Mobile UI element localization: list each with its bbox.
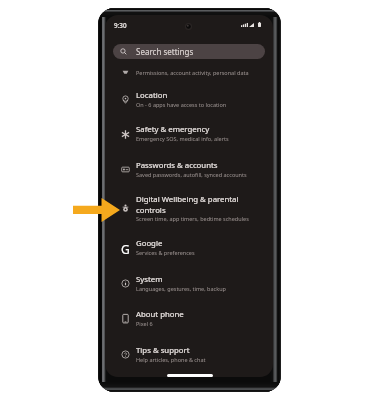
button[interactable] [105,233,273,267]
staticText: On - 6 apps have access to location [136,101,227,108]
staticText: System [136,274,163,285]
button[interactable] [105,154,273,188]
staticText: 9:30 [114,21,127,30]
staticText: Pixel 6 [136,320,153,327]
staticText: About phone [136,309,184,320]
button[interactable] [105,63,273,77]
staticText: Languages, gestures, time, backup [136,285,226,292]
staticText: Emergency SOS, medical info, alerts [136,135,229,142]
staticText: Location [136,90,168,101]
staticText: Search settings [136,46,194,57]
staticText: Help articles, phone & chat [136,356,206,363]
staticText: Screen time, app timers, bedtime schedul… [136,215,249,222]
button[interactable]: Search settings [113,44,265,59]
staticText: Services & preferences [136,249,195,256]
staticText: Google [136,238,163,249]
staticText: Saved passwords, autofill, synced accoun… [136,171,247,178]
button[interactable] [105,339,273,373]
other: Pointer arrow [73,198,120,222]
button[interactable] [105,85,273,118]
button[interactable] [105,268,273,302]
button[interactable] [105,189,273,231]
button[interactable] [105,119,273,153]
staticText: Digital Wellbeing & parental controls [136,194,266,215]
staticText: Passwords & accounts [136,160,218,171]
staticText: Permissions, account activity, personal … [136,69,249,76]
staticText: G [121,241,130,257]
button[interactable] [105,303,273,337]
staticText: Safety & emergency [136,124,210,135]
staticText: Tips & support [136,345,190,356]
